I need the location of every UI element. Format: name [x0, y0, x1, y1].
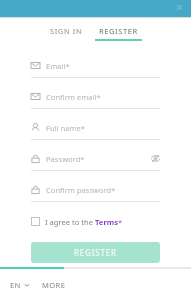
staticText: EN	[10, 280, 21, 290]
staticText: SIGN IN	[50, 26, 83, 36]
staticText: Email*	[46, 61, 70, 71]
staticText: MORE	[42, 280, 66, 290]
staticText: Full name*	[46, 123, 86, 133]
staticText: Password*	[46, 154, 85, 164]
button[interactable]: Full name*	[31, 119, 160, 140]
button[interactable]: Email*	[31, 57, 160, 78]
staticText: Confirm email*	[46, 92, 101, 102]
staticText: Confirm password*	[46, 185, 116, 195]
button[interactable]: I agree to the Terms*	[31, 214, 160, 229]
button[interactable]: Language EN	[10, 280, 30, 290]
button[interactable]: Confirm email*	[31, 88, 160, 109]
staticText: REGISTER	[99, 26, 138, 36]
button[interactable]: REGISTER	[95, 26, 142, 45]
button[interactable]: Show password	[151, 154, 160, 163]
button[interactable]: Close	[174, 2, 185, 13]
button[interactable]: MORE	[42, 280, 66, 290]
button[interactable]: Confirm password*	[31, 181, 160, 202]
staticText: I agree to the Terms*	[45, 217, 123, 227]
button[interactable]: SIGN IN	[50, 26, 83, 45]
button[interactable]: Password*	[31, 150, 160, 171]
button[interactable]: REGISTER	[31, 242, 160, 263]
staticText: REGISTER	[74, 247, 117, 258]
